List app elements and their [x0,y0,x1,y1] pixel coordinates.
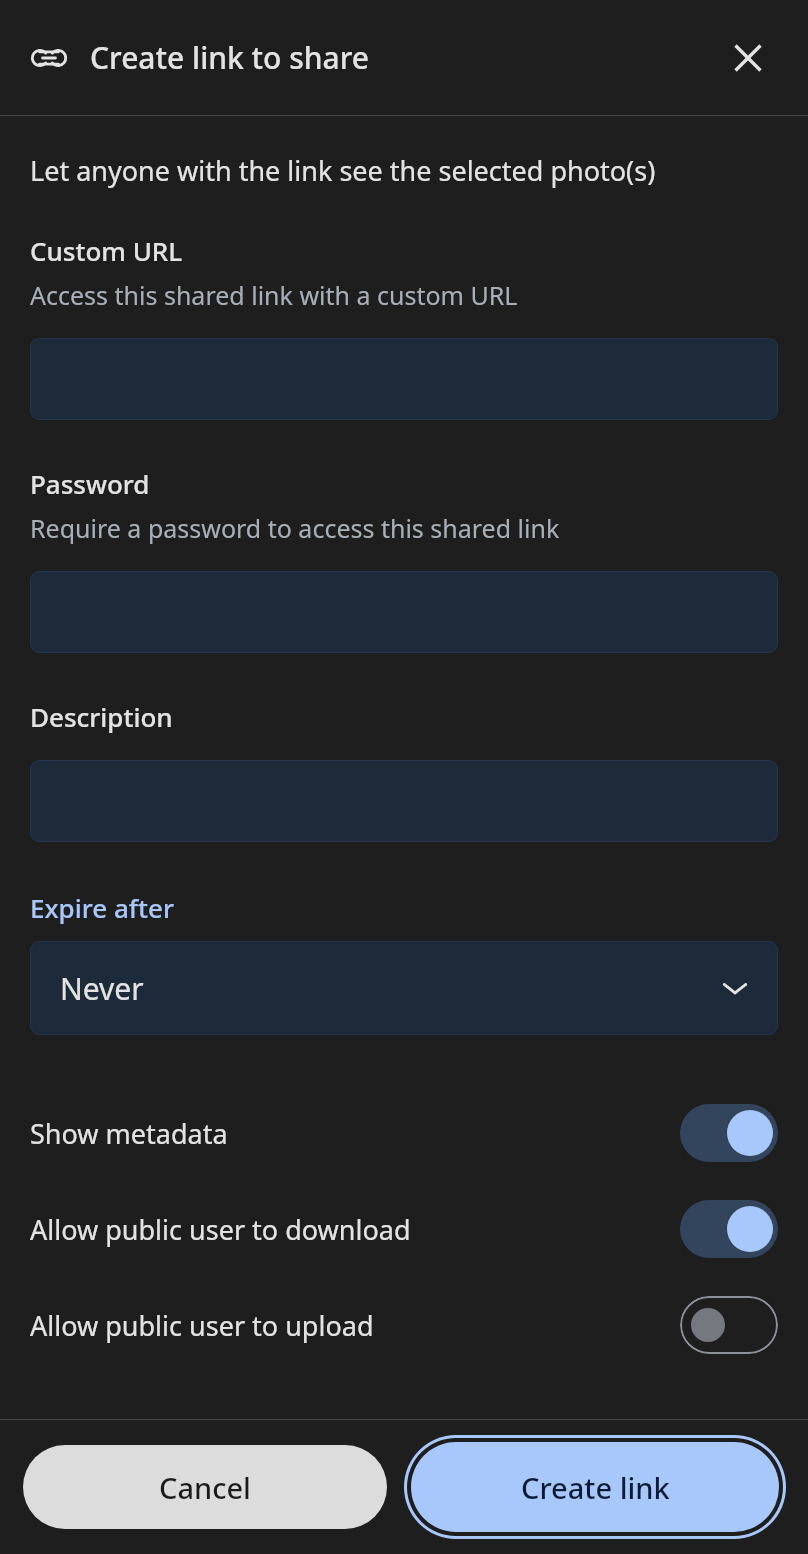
staticText: Allow public user to download [30,1211,680,1248]
staticText: Custom URL [30,233,183,268]
staticText: Description [30,699,173,734]
staticText: Let anyone with the link see the selecte… [30,152,656,189]
button[interactable]: Create link [411,1442,779,1532]
staticText: Create link [521,1468,670,1507]
button[interactable]: Allow public user to download [0,1181,808,1277]
button[interactable]: Cancel [23,1445,387,1529]
staticText: Cancel [159,1468,251,1507]
staticText: Allow public user to upload [30,1307,680,1344]
button[interactable]: Show metadata [0,1085,808,1181]
button[interactable]: Allow public user to upload [0,1277,808,1373]
staticText: Access this shared link with a custom UR… [30,278,518,312]
staticText: Expire after [30,890,174,925]
staticText: Require a password to access this shared… [30,511,560,545]
staticText: Show metadata [30,1115,680,1152]
staticText: Never [60,968,720,1009]
button[interactable]: Close [710,20,786,96]
staticText: Password [30,466,150,501]
staticText: Create link to share [90,37,710,78]
button[interactable]: Never [30,941,778,1035]
